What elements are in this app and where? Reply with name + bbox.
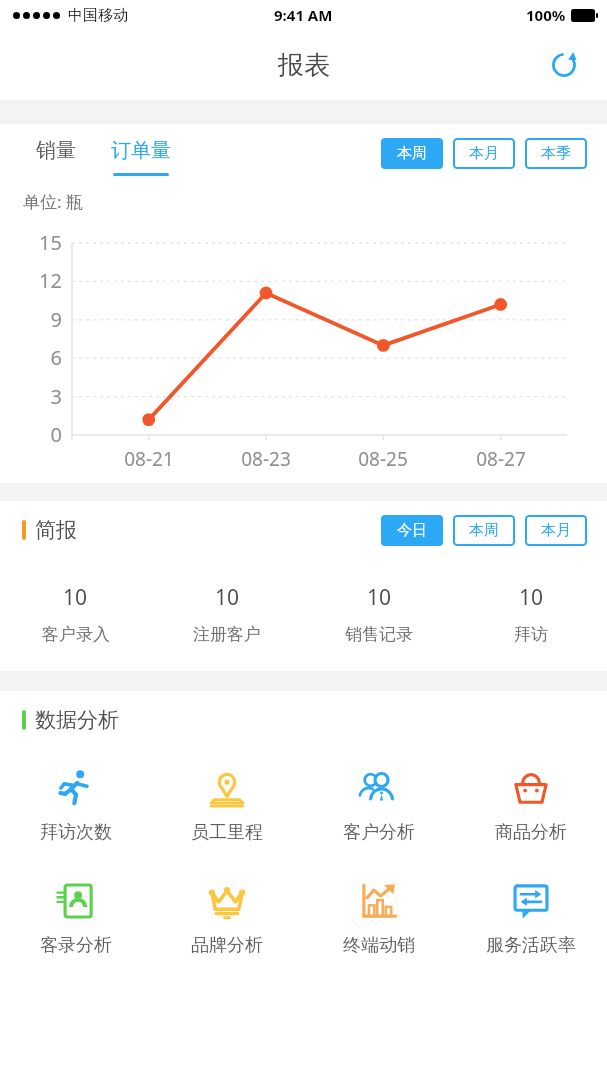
staticText: 15 bbox=[18, 229, 62, 256]
staticText: 商品分析 bbox=[495, 821, 567, 844]
button[interactable]: 本周 bbox=[381, 138, 443, 169]
button[interactable]: 服务活跃率 bbox=[455, 876, 607, 961]
staticText: 销量 bbox=[36, 138, 76, 163]
staticText: 报表 bbox=[278, 49, 330, 82]
button[interactable]: 10 bbox=[455, 579, 607, 649]
staticText: 单位: 瓶 bbox=[23, 190, 83, 213]
staticText: 08-21 bbox=[109, 446, 189, 472]
staticText: 拜访次数 bbox=[40, 821, 112, 844]
staticText: 6 bbox=[18, 344, 62, 371]
staticText: 中国移动 bbox=[68, 6, 128, 25]
button[interactable]: 本季 bbox=[525, 138, 587, 169]
staticText: 销售记录 bbox=[345, 624, 413, 645]
staticText: 品牌分析 bbox=[191, 934, 263, 957]
button[interactable]: 订单量 bbox=[106, 134, 176, 180]
button[interactable]: Refresh bbox=[541, 42, 587, 88]
staticText: 本周 bbox=[397, 144, 427, 163]
staticText: 9:41 AM bbox=[274, 5, 333, 25]
staticText: 10 bbox=[367, 583, 392, 612]
button[interactable]: 客户分析 bbox=[303, 763, 455, 848]
staticText: 本周 bbox=[469, 521, 499, 540]
button[interactable]: 今日 bbox=[381, 515, 443, 546]
staticText: 服务活跃率 bbox=[486, 934, 576, 957]
staticText: 08-23 bbox=[226, 446, 306, 472]
button[interactable]: 10 bbox=[151, 579, 303, 649]
staticText: 本月 bbox=[469, 144, 499, 163]
staticText: 10 bbox=[519, 583, 544, 612]
staticText: 0 bbox=[18, 421, 62, 448]
button[interactable]: 终端动销 bbox=[303, 876, 455, 961]
button[interactable]: 员工里程 bbox=[151, 763, 303, 848]
staticText: 注册客户 bbox=[193, 624, 261, 645]
staticText: 9 bbox=[18, 306, 62, 333]
staticText: 客户分析 bbox=[343, 821, 415, 844]
staticText: 数据分析 bbox=[35, 707, 119, 733]
button[interactable]: 本月 bbox=[453, 138, 515, 169]
staticText: 08-25 bbox=[343, 446, 423, 472]
staticText: 本月 bbox=[541, 521, 571, 540]
staticText: 08-27 bbox=[461, 446, 541, 472]
staticText: 100% bbox=[526, 5, 566, 25]
staticText: 订单量 bbox=[111, 138, 171, 163]
button[interactable]: 拜访次数 bbox=[0, 763, 151, 848]
staticText: 客录分析 bbox=[40, 934, 112, 957]
button[interactable]: 客录分析 bbox=[0, 876, 151, 961]
staticText: 3 bbox=[18, 383, 62, 410]
button[interactable]: 本周 bbox=[453, 515, 515, 546]
button[interactable]: 10 bbox=[0, 579, 151, 649]
button[interactable]: 销量 bbox=[26, 134, 86, 180]
button[interactable]: 本月 bbox=[525, 515, 587, 546]
staticText: 客户录入 bbox=[42, 624, 110, 645]
staticText: 12 bbox=[18, 267, 62, 294]
button[interactable]: 品牌分析 bbox=[151, 876, 303, 961]
button[interactable]: 10 bbox=[303, 579, 455, 649]
button[interactable]: 商品分析 bbox=[455, 763, 607, 848]
staticText: 10 bbox=[215, 583, 240, 612]
staticText: 简报 bbox=[35, 517, 77, 543]
staticText: 本季 bbox=[541, 144, 571, 163]
staticText: 10 bbox=[63, 583, 88, 612]
staticText: 拜访 bbox=[514, 624, 548, 645]
staticText: 今日 bbox=[397, 521, 427, 540]
staticText: 员工里程 bbox=[191, 821, 263, 844]
staticText: 终端动销 bbox=[343, 934, 415, 957]
